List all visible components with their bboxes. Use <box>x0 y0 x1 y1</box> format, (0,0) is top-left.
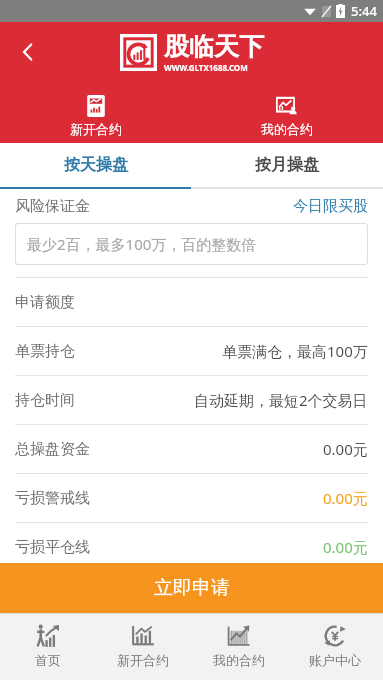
staticText: 亏损警戒线 <box>15 489 90 508</box>
staticText: 股临天下 <box>164 31 264 62</box>
staticText: 按月操盘 <box>255 155 319 175</box>
button[interactable]: 最少2百，最多100万，百的整数倍 <box>15 223 368 265</box>
staticText: 我的合约 <box>261 121 313 137</box>
button[interactable]: 我的合约 <box>191 93 383 139</box>
staticText: 账户中心 <box>309 652 361 668</box>
staticText: 风险保证金 <box>15 197 90 216</box>
staticText: 申请额度 <box>15 293 75 312</box>
staticText: 首页 <box>35 652 61 668</box>
button[interactable]: 按天操盘 <box>0 143 191 187</box>
staticText: WWW.GLTX1688.COM <box>164 62 248 73</box>
staticText: 最少2百，最多100万，百的整数倍 <box>27 234 257 254</box>
staticText: 新开合约 <box>70 121 122 137</box>
staticText: 立即申请 <box>154 576 230 600</box>
staticText: 0.00元 <box>323 439 368 459</box>
staticText: 今日限买股 <box>293 197 368 216</box>
staticText: 总操盘资金 <box>15 440 90 459</box>
staticText: 0.00元 <box>323 537 368 557</box>
staticText: 单票持仓 <box>15 342 75 361</box>
staticText: 单票满仓，最高100万 <box>222 341 368 361</box>
staticText: 新开合约 <box>117 652 169 668</box>
staticText: 自动延期，最短2个交易日 <box>194 390 368 410</box>
staticText: 按天操盘 <box>64 155 128 175</box>
staticText: 我的合约 <box>213 652 265 668</box>
staticText: 5:44 <box>351 2 377 20</box>
staticText: 0.00元 <box>323 488 368 508</box>
button[interactable]: 按月操盘 <box>191 143 383 187</box>
staticText: 亏损平仓线 <box>15 538 90 557</box>
button[interactable]: 新开合约 <box>0 93 191 139</box>
button[interactable]: 首页 <box>0 614 95 680</box>
button[interactable]: 立即申请 <box>0 563 383 613</box>
button[interactable]: 我的合约 <box>191 614 287 680</box>
button[interactable]: 今日限买股 <box>293 197 368 216</box>
button[interactable]: 账户中心 <box>287 614 383 680</box>
button[interactable]: Back <box>8 32 48 72</box>
staticText: 持仓时间 <box>15 391 75 410</box>
button[interactable]: 新开合约 <box>95 614 191 680</box>
